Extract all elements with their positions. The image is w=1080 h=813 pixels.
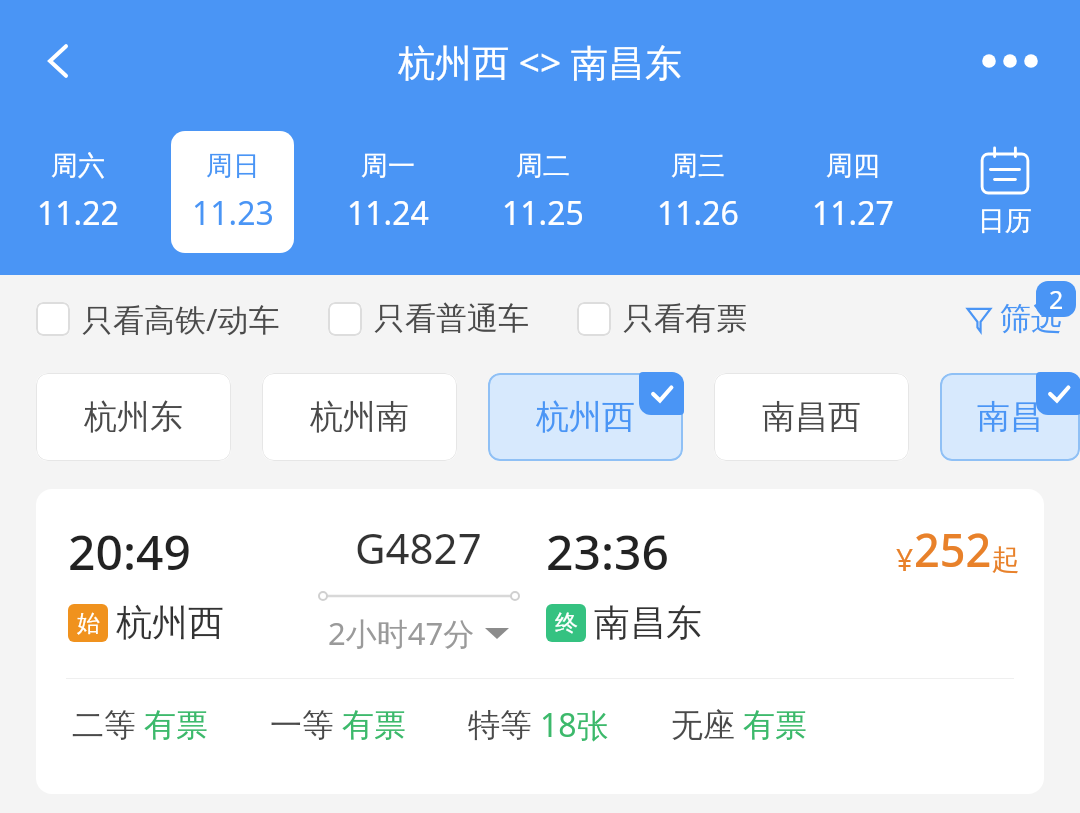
staticText: 无座 [671, 705, 735, 745]
staticText: 252 [914, 519, 992, 580]
button[interactable]: 周日 [171, 131, 294, 253]
staticText: 南昌 [977, 396, 1043, 438]
staticText: 特等 [468, 705, 532, 745]
button[interactable]: 20:49 [36, 489, 1044, 794]
staticText: 周六 [51, 149, 105, 183]
button[interactable]: 南昌 [940, 373, 1080, 461]
button[interactable]: Back [22, 25, 94, 97]
button[interactable]: 杭州西 [488, 373, 683, 461]
staticText: 只看高铁/动车 [82, 298, 280, 340]
staticText: 杭州东 [84, 396, 183, 438]
staticText: 起 [992, 542, 1020, 577]
staticText: 杭州西 <> 南昌东 [398, 36, 682, 87]
staticText: 杭州西 [116, 600, 224, 645]
staticText: 有票 [743, 705, 807, 745]
staticText: 日历 [978, 204, 1032, 238]
staticText: 周四 [826, 149, 880, 183]
staticText: 11.25 [502, 191, 584, 235]
button[interactable]: 只看高铁/动车 [36, 298, 280, 340]
staticText: 杭州西 [536, 396, 635, 438]
staticText: 20:49 [68, 519, 191, 584]
button[interactable]: 筛选 [966, 299, 1066, 338]
staticText: 二等 [72, 705, 136, 745]
button[interactable]: 杭州东 [36, 373, 231, 461]
button[interactable]: 周六 [16, 131, 139, 253]
button[interactable]: 杭州南 [262, 373, 457, 461]
staticText: 南昌东 [594, 600, 702, 645]
staticText: 筛选 [1000, 299, 1062, 338]
staticText: 只看普通车 [374, 299, 529, 338]
staticText: 周二 [516, 149, 570, 183]
staticText: 杭州南 [310, 396, 409, 438]
staticText: 有票 [144, 705, 208, 745]
button[interactable]: 南昌西 [714, 373, 909, 461]
staticText: 11.23 [192, 191, 274, 235]
button[interactable]: 周一 [326, 131, 449, 253]
staticText: 周三 [671, 149, 725, 183]
staticText: 11.22 [37, 191, 119, 235]
button[interactable]: 周三 [636, 131, 759, 253]
button[interactable]: More options [970, 26, 1050, 96]
staticText: 有票 [342, 705, 406, 745]
button[interactable]: 只看有票 [577, 299, 747, 338]
button[interactable]: Calendar [930, 122, 1080, 262]
staticText: 11.24 [347, 191, 429, 235]
staticText: 周一 [361, 149, 415, 183]
staticText: 只看有票 [623, 299, 747, 338]
staticText: ¥ [896, 539, 914, 580]
staticText: 一等 [270, 705, 334, 745]
staticText: 2 [1049, 282, 1064, 316]
staticText: 11.27 [812, 191, 894, 235]
button[interactable]: 周二 [481, 131, 604, 253]
staticText: 周日 [206, 149, 260, 183]
staticText: G4827 [355, 519, 482, 576]
staticText: 2小时47分 [328, 612, 475, 654]
staticText: 南昌西 [762, 396, 861, 438]
staticText: 18张 [540, 703, 609, 747]
button[interactable]: 只看普通车 [328, 299, 529, 338]
staticText: 11.26 [657, 191, 739, 235]
button[interactable]: 周四 [791, 131, 914, 253]
staticText: 23:36 [546, 519, 669, 584]
staticText: 始 [77, 609, 100, 638]
staticText: 终 [555, 609, 578, 638]
